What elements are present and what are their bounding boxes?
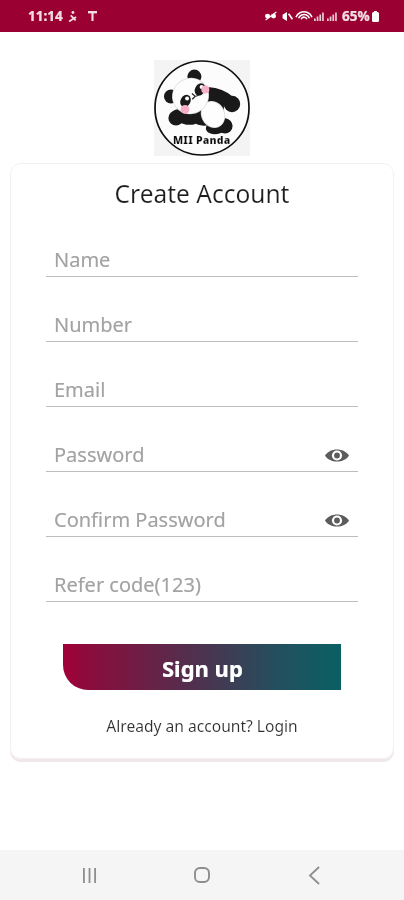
- staticText: Name: [54, 246, 111, 273]
- button[interactable]: Toggle password visibility: [320, 503, 354, 537]
- staticText: Refer code(123): [54, 571, 201, 598]
- staticText: Number: [54, 311, 133, 338]
- button[interactable]: Sign up: [63, 644, 341, 690]
- button[interactable]: Recent apps: [68, 853, 112, 897]
- button[interactable]: Back: [292, 853, 336, 897]
- staticText: MII Panda: [173, 133, 231, 147]
- staticText: Create Account: [10, 177, 394, 210]
- staticText: 65%: [342, 7, 370, 25]
- button[interactable]: Home: [180, 853, 224, 897]
- staticText: Confirm Password: [54, 506, 226, 533]
- button[interactable]: Already an account? Login: [10, 712, 394, 739]
- staticText: Password: [54, 441, 145, 468]
- staticText: Email: [54, 376, 106, 403]
- staticText: Sign up: [162, 653, 243, 683]
- button[interactable]: Toggle password visibility: [320, 438, 354, 472]
- staticText: 11:14: [28, 7, 63, 25]
